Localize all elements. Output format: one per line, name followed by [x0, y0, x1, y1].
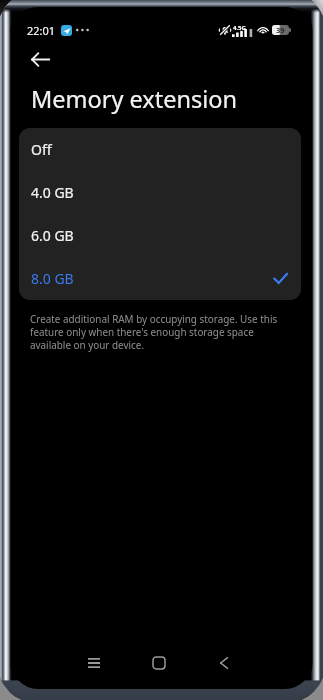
button[interactable]: Back — [22, 41, 58, 77]
staticText: Off — [31, 140, 52, 159]
button[interactable]: Back — [208, 647, 240, 679]
button[interactable]: 4.0 GB — [19, 171, 301, 214]
staticText: 8.0 GB — [31, 269, 74, 288]
button[interactable]: Home — [143, 647, 175, 679]
staticText: Memory extension — [31, 83, 238, 115]
staticText: 39 — [276, 25, 285, 35]
button[interactable]: 8.0 GB — [19, 257, 301, 300]
staticText: 4.5G — [233, 24, 246, 32]
button[interactable]: Recent apps — [78, 647, 110, 679]
button[interactable]: Off — [19, 128, 301, 171]
staticText: 4.0 GB — [31, 183, 74, 202]
staticText: 6.0 GB — [31, 226, 74, 245]
staticText: 22:01 — [27, 23, 56, 38]
staticText: Create additional RAM by occupying stora… — [30, 312, 290, 351]
button[interactable]: 6.0 GB — [19, 214, 301, 257]
